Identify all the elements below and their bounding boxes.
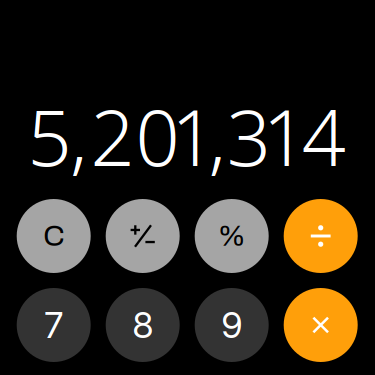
staticText: 4 (302, 85, 346, 187)
staticText: , (208, 85, 225, 187)
staticText: , (70, 85, 87, 187)
staticText: 8 (132, 303, 153, 347)
staticText: % (218, 220, 246, 252)
button[interactable]: Divide (284, 199, 358, 273)
staticText: 5 (27, 85, 71, 187)
staticText: C (43, 220, 64, 252)
staticText: 3 (227, 85, 271, 187)
button[interactable]: C (17, 199, 91, 273)
staticText: 1 (263, 85, 307, 187)
staticText: 0 (135, 85, 179, 187)
staticText: 1 (171, 85, 215, 187)
staticText: 2 (90, 85, 134, 187)
button[interactable]: Multiply (284, 288, 358, 362)
button[interactable]: 7 (17, 288, 91, 362)
staticText: 9 (221, 303, 242, 347)
button[interactable]: 8 (106, 288, 180, 362)
button[interactable]: Plus minus (106, 199, 180, 273)
button[interactable]: 9 (195, 288, 269, 362)
button[interactable]: % (195, 199, 269, 273)
staticText: 7 (44, 303, 63, 347)
